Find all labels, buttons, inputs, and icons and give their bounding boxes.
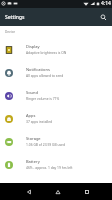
staticText: Avg. 1.6 GB of 2.0 GB used: [26, 188, 67, 192]
button[interactable]: Back: [15, 183, 43, 200]
staticText: Storage: [26, 136, 41, 141]
staticText: 1.06 GB of 23.59 GB used: [26, 142, 65, 146]
staticText: Settings: [5, 14, 25, 21]
staticText: Device: [5, 30, 16, 34]
button[interactable]: Home: [43, 183, 72, 200]
button[interactable]: Notifications: [0, 61, 112, 84]
button[interactable]: Storage: [0, 130, 112, 153]
button[interactable]: Recent apps: [72, 183, 101, 200]
button[interactable]: Battery: [0, 153, 112, 176]
button[interactable]: Apps: [0, 107, 112, 130]
staticText: Ringer volume is 71%: [26, 96, 60, 100]
staticText: Adaptive brightness is ON: [26, 50, 67, 54]
staticText: 46% - approx. 1 day 19 hrs left: [26, 165, 73, 169]
staticText: Apps: [26, 113, 36, 118]
button[interactable]: Memory: [0, 176, 112, 199]
staticText: All apps allowed to send: [26, 73, 64, 77]
staticText: Notifications: [26, 67, 50, 72]
button[interactable]: Sound: [0, 84, 112, 107]
button[interactable]: Display: [0, 38, 112, 61]
staticText: Display: [26, 44, 40, 49]
staticText: Battery: [26, 159, 40, 164]
staticText: Memory: [26, 182, 42, 187]
staticText: Sound: [26, 90, 39, 95]
staticText: 4:14: [101, 0, 111, 7]
button[interactable]: Search: [96, 10, 110, 24]
staticText: 37 apps installed: [26, 119, 53, 123]
